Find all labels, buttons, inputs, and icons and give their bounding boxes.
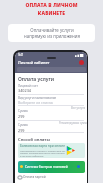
staticText: Сумма (18, 109, 28, 113)
staticText: Рекомендуемая сумма (59, 121, 87, 125)
staticText: Способ оплаты (18, 137, 50, 143)
staticText: Лицевой счет (18, 84, 38, 88)
staticText: Вид услуги наименование (18, 96, 57, 100)
staticText: Сумма (18, 123, 28, 127)
staticText: Все услуги (71, 106, 86, 110)
staticText: Выберите из списка (18, 100, 53, 105)
staticText: Система быстрых платежей (25, 165, 68, 169)
staticText: 340234 (18, 88, 32, 93)
staticText: Банковская карта при оплате (20, 144, 65, 148)
button[interactable]: Профиль (79, 60, 84, 65)
staticText: 299 (18, 128, 25, 133)
staticText: Личный кабинет (18, 60, 50, 65)
staticText: Оплата услуги (18, 76, 55, 83)
staticText: Принимаем к оплате с комиссией 0% сервис… (20, 149, 66, 158)
button[interactable]: Система быстрых платежей (18, 161, 85, 173)
staticText: 9:41 (18, 53, 24, 57)
staticText: Оплата картой (23, 175, 46, 179)
staticText: 299 (18, 114, 25, 119)
staticText: Оплачивайте услуги напрямую из приложени… (24, 27, 80, 39)
other: Google Play (66, 146, 75, 155)
staticText: ОПЛАТА В ЛИЧНОМ КАБИНЕТЕ (25, 2, 78, 17)
button[interactable]: Банковская карта при оплате (18, 143, 85, 158)
